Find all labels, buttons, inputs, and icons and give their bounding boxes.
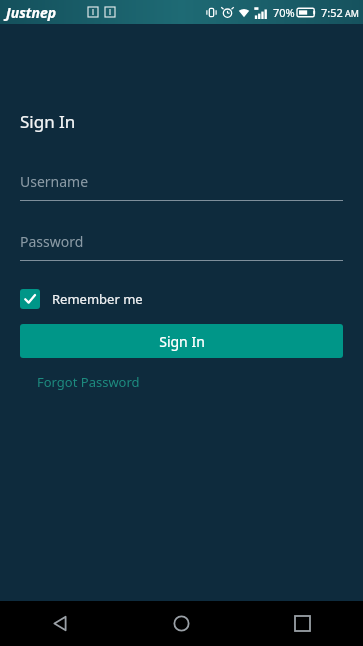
- staticText: Sign In: [159, 332, 205, 351]
- staticText: Remember me: [52, 290, 143, 308]
- button[interactable]: Home: [121, 601, 242, 646]
- button[interactable]: Back: [0, 601, 121, 646]
- staticText: Justnep: [6, 3, 57, 22]
- staticText: Username: [20, 172, 89, 191]
- button[interactable]: Password: [20, 232, 343, 261]
- staticText: Password: [20, 232, 84, 251]
- staticText: Forgot Password: [37, 373, 140, 391]
- staticText: 7:52: [321, 5, 343, 20]
- staticText: AM: [345, 7, 359, 19]
- staticText: 70%: [273, 5, 295, 20]
- button[interactable]: Recents: [242, 601, 363, 646]
- button[interactable]: Username: [20, 172, 343, 201]
- button[interactable]: Sign In: [20, 324, 343, 358]
- button[interactable]: Remember me: [20, 289, 143, 309]
- button[interactable]: Forgot Password: [37, 373, 140, 391]
- staticText: Sign In: [20, 110, 76, 133]
